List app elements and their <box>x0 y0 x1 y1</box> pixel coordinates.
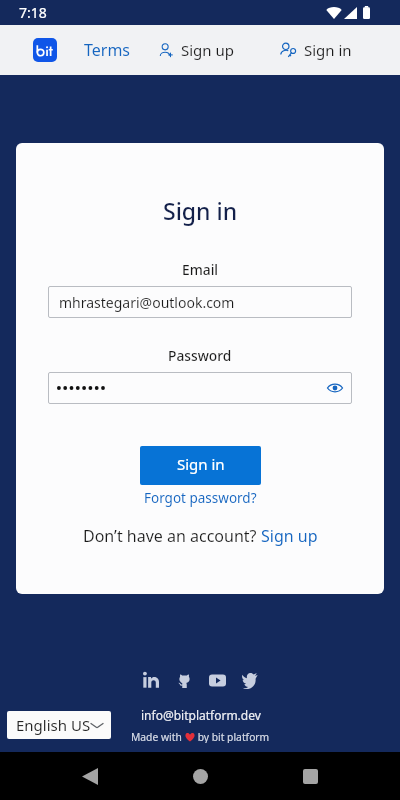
button[interactable]: Sign in <box>276 32 356 68</box>
button[interactable]: Show password <box>325 378 345 398</box>
button[interactable]: Twitter <box>237 667 263 693</box>
button[interactable]: Sign in <box>140 446 261 485</box>
button[interactable]: bit logo <box>33 38 57 62</box>
button[interactable]: Show password <box>48 372 352 404</box>
button[interactable]: Recents <box>292 758 328 794</box>
button[interactable]: Home <box>182 758 218 794</box>
staticText: 7:18 <box>19 3 47 22</box>
staticText: Sign up <box>261 525 318 547</box>
staticText: Password <box>168 346 232 365</box>
staticText: Made with <box>131 730 185 743</box>
button[interactable]: English US <box>7 711 111 739</box>
staticText: Sign in <box>177 454 225 474</box>
staticText: Sign in <box>163 195 238 226</box>
staticText: Sign up <box>181 40 234 60</box>
staticText: mhrastegari@outlook.com <box>59 293 235 312</box>
staticText: Terms <box>84 39 131 61</box>
staticText: Forgot password? <box>144 489 257 507</box>
button[interactable]: mhrastegari@outlook.com <box>48 286 352 318</box>
button[interactable]: YouTube <box>204 667 230 693</box>
button[interactable]: GitHub <box>171 667 197 693</box>
staticText: by bit platform <box>195 730 270 743</box>
button[interactable]: info@bitplatform.dev <box>141 707 261 723</box>
button[interactable]: Terms <box>80 31 135 69</box>
staticText: info@bitplatform.dev <box>141 707 261 723</box>
staticText: English US <box>16 715 91 735</box>
button[interactable]: Sign up <box>155 32 238 68</box>
staticText: Don’t have an account? <box>83 525 261 547</box>
staticText: Email <box>182 260 219 279</box>
button[interactable]: Forgot password? <box>144 489 257 507</box>
button[interactable]: LinkedIn <box>138 667 164 693</box>
staticText: Sign in <box>304 40 352 60</box>
button[interactable]: Back <box>72 758 108 794</box>
button[interactable]: Sign up <box>261 525 318 547</box>
